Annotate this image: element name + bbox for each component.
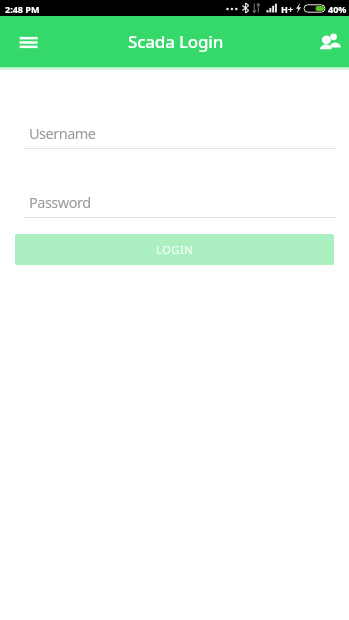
button[interactable]: Open navigation menu bbox=[8, 22, 48, 62]
button[interactable]: People bbox=[308, 21, 348, 61]
staticText: 40% bbox=[328, 3, 347, 15]
staticText: Password bbox=[29, 192, 91, 212]
button[interactable]: Username bbox=[24, 120, 336, 149]
staticText: 2:48 PM bbox=[5, 3, 40, 15]
staticText: LOGIN bbox=[156, 242, 194, 257]
button[interactable]: Password bbox=[24, 189, 336, 218]
button[interactable]: LOGIN bbox=[15, 234, 334, 265]
staticText: H+ bbox=[281, 3, 294, 15]
staticText: Username bbox=[29, 123, 96, 143]
staticText: Scada Login bbox=[128, 30, 224, 53]
